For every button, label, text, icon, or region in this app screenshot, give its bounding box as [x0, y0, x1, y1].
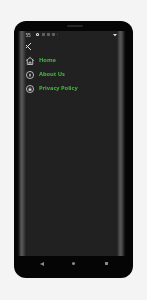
button[interactable]: Privacy Policy [17, 82, 125, 96]
button[interactable]: Back [35, 257, 48, 270]
button[interactable]: Close menu [21, 40, 33, 52]
button[interactable]: Recent apps [100, 257, 113, 270]
staticText: About Us [39, 70, 65, 78]
staticText: Privacy Policy [39, 84, 78, 92]
button[interactable]: Home [17, 54, 125, 68]
button[interactable]: Home [67, 257, 80, 270]
button[interactable]: About Us [17, 68, 125, 82]
staticText: Home [39, 56, 56, 64]
staticText: 10:55 [19, 32, 31, 38]
